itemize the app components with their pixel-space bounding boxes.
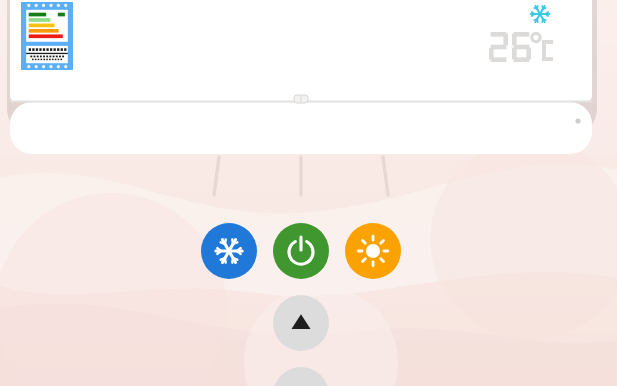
button[interactable]: Heat mode <box>345 223 401 279</box>
button[interactable]: Decrease temperature <box>273 367 329 386</box>
button[interactable]: Increase temperature <box>273 295 329 351</box>
button[interactable]: Power <box>273 223 329 279</box>
button[interactable]: Cool mode <box>201 223 257 279</box>
button[interactable]: Energy rating label <box>21 2 73 70</box>
